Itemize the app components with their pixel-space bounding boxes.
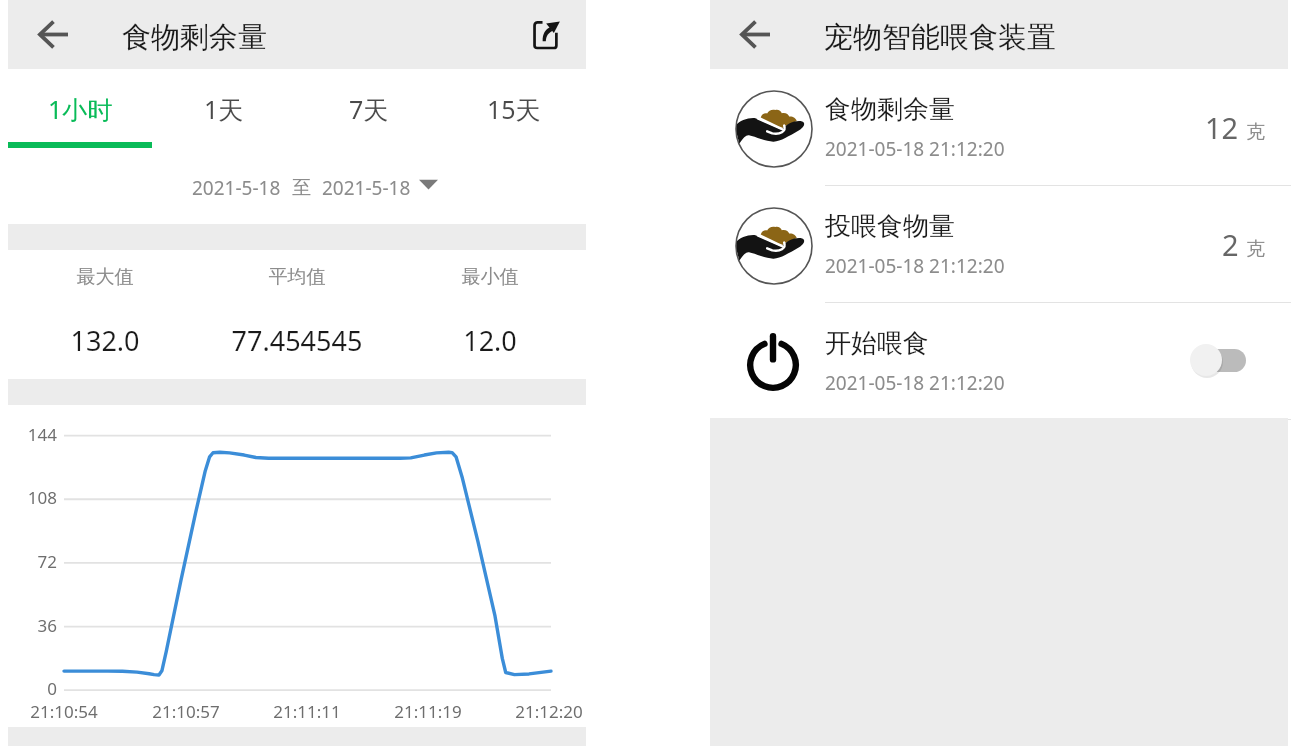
staticText: 克 — [1246, 237, 1265, 261]
staticText: 2021-5-18 — [322, 175, 411, 201]
staticText: 1天 — [204, 92, 244, 126]
button[interactable]: 1小时 — [8, 69, 152, 152]
staticText: 15天 — [487, 92, 541, 126]
staticText: 0 — [1, 677, 57, 700]
staticText: 21:10:54 — [0, 700, 144, 723]
staticText: 2021-05-18 21:12:20 — [825, 370, 1005, 396]
staticText: 12.0 — [370, 322, 610, 359]
button[interactable]: Back — [30, 11, 76, 57]
staticText: 77.454545 — [177, 322, 417, 359]
staticText: 21:10:57 — [106, 700, 266, 723]
button[interactable]: 1天 — [152, 69, 296, 152]
staticText: 132.0 — [0, 322, 225, 359]
staticText: 2 — [1222, 225, 1239, 264]
staticText: 最大值 — [0, 265, 225, 289]
staticText: 开始喂食 — [825, 327, 929, 360]
staticText: 投喂食物量 — [825, 210, 955, 243]
staticText: 21:11:11 — [227, 700, 387, 723]
button[interactable]: Share — [526, 13, 568, 55]
button[interactable]: Toggle feeding — [1190, 342, 1246, 380]
staticText: 108 — [1, 486, 57, 509]
staticText: 21:12:20 — [469, 700, 629, 723]
staticText: 宠物智能喂食装置 — [824, 19, 1056, 56]
staticText: 72 — [1, 550, 57, 573]
staticText: 144 — [1, 423, 57, 446]
staticText: 2021-05-18 21:12:20 — [825, 253, 1005, 279]
button[interactable]: 开始喂食 — [710, 303, 1291, 419]
button[interactable]: 15天 — [441, 69, 586, 152]
staticText: 7天 — [349, 92, 389, 126]
staticText: 21:11:19 — [348, 700, 508, 723]
staticText: 食物剩余量 — [825, 93, 955, 126]
button[interactable]: Back — [732, 11, 778, 57]
staticText: 2021-05-18 21:12:20 — [825, 136, 1005, 162]
button[interactable]: 7天 — [296, 69, 441, 152]
staticText: 至 — [292, 176, 311, 200]
staticText: 36 — [1, 614, 57, 637]
staticText: 1小时 — [48, 92, 113, 126]
button[interactable]: 投喂食物量 — [710, 186, 1291, 302]
staticText: 12 — [1205, 108, 1239, 147]
staticText: 2021-5-18 — [192, 175, 281, 201]
staticText: 食物剩余量 — [122, 19, 267, 56]
staticText: 最小值 — [370, 265, 610, 289]
button[interactable]: 食物剩余量 — [710, 69, 1291, 185]
button[interactable]: 2021-5-18 — [186, 169, 444, 207]
staticText: 克 — [1246, 120, 1265, 144]
staticText: 平均值 — [177, 265, 417, 289]
